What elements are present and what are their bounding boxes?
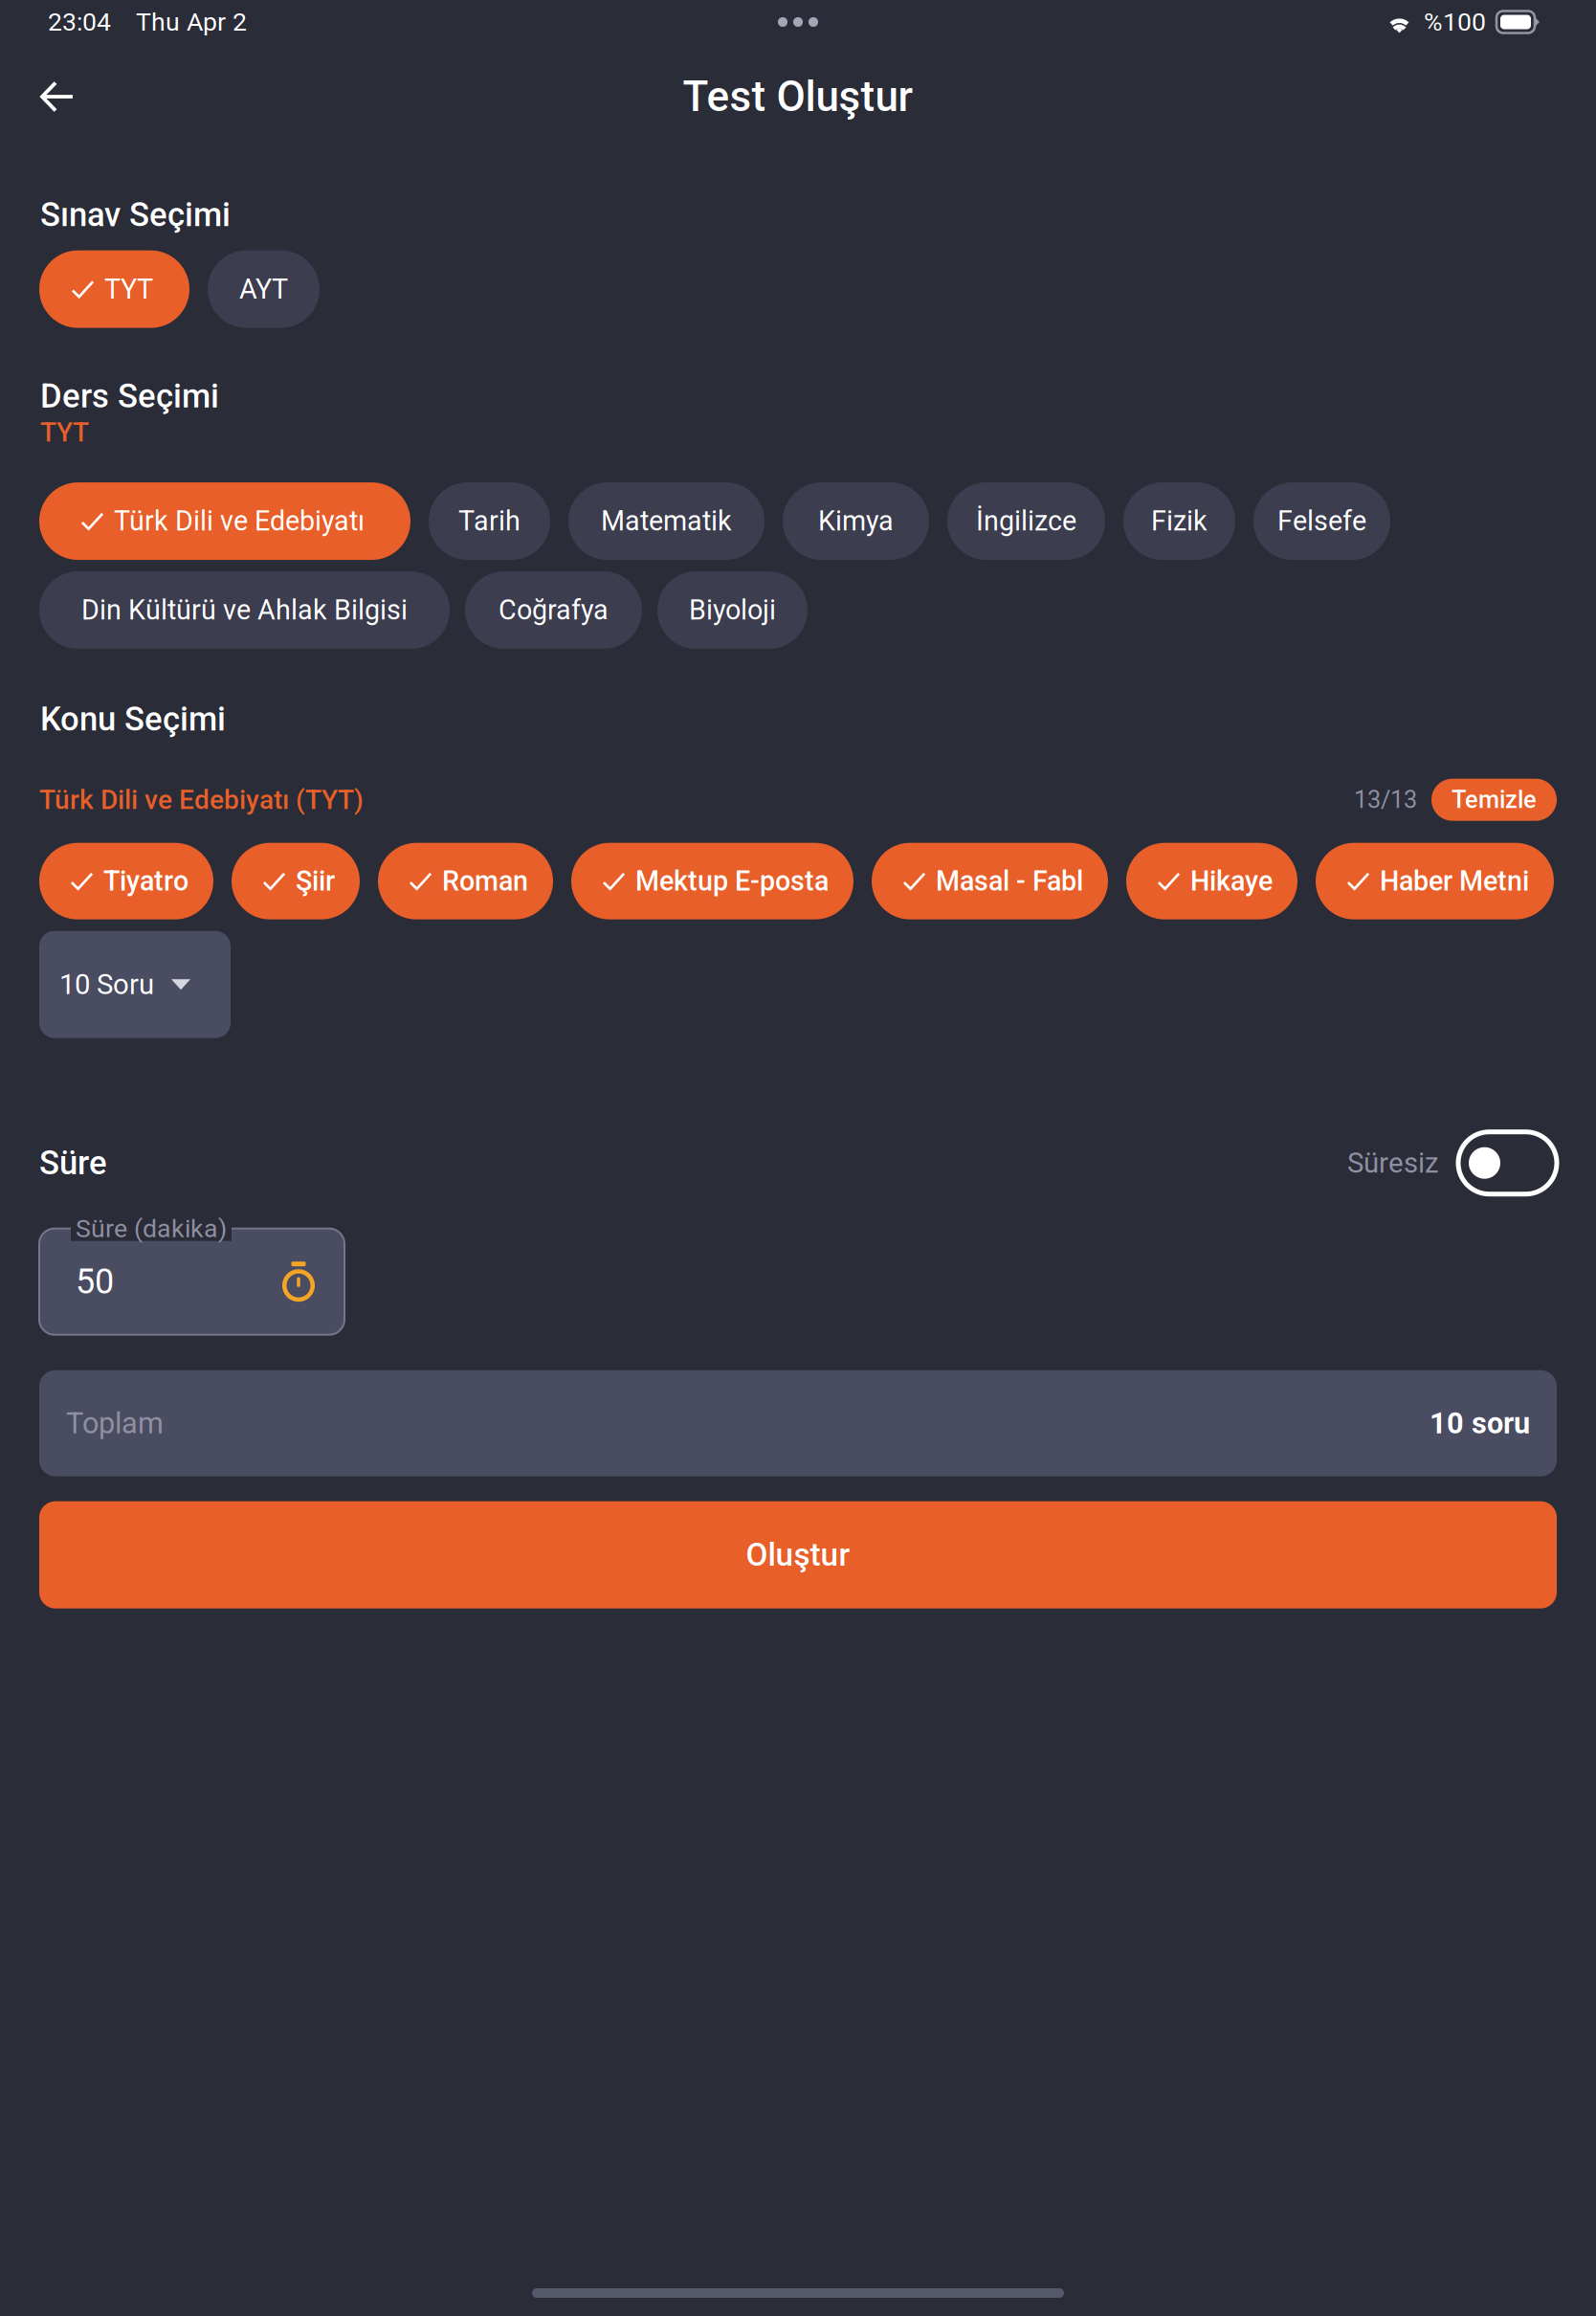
button[interactable]: İngilizce (947, 482, 1105, 560)
staticText: İngilizce (976, 505, 1076, 537)
staticText: Biyoloji (689, 594, 776, 626)
button[interactable]: Mektup E-posta (571, 843, 853, 919)
staticText: Kimya (818, 505, 894, 537)
button[interactable]: Süresiz (1458, 1132, 1557, 1194)
button[interactable]: Temizle (1431, 779, 1557, 821)
button[interactable]: Roman (378, 843, 553, 919)
staticText: Felsefe (1277, 505, 1366, 537)
staticText: Türk Dili ve Edebiyatı (TYT) (39, 784, 364, 815)
button[interactable]: Biyoloji (657, 571, 808, 649)
button[interactable]: Haber Metni (1316, 843, 1554, 919)
staticText: Tarih (458, 505, 521, 537)
staticText: Süresiz (1347, 1147, 1439, 1179)
staticText: Ders Seçimi (40, 377, 219, 416)
staticText: 10 Soru (59, 968, 154, 1001)
staticText: Thu Apr 2 (136, 7, 247, 37)
staticText: Oluştur (746, 1536, 850, 1574)
staticText: Mektup E-posta (635, 865, 829, 897)
button[interactable]: Matematik (568, 482, 765, 560)
button[interactable]: Türk Dili ve Edebiyatı (39, 482, 410, 560)
button[interactable]: Felsefe (1253, 482, 1390, 560)
staticText: TYT (40, 417, 89, 448)
staticText: AYT (239, 273, 288, 305)
button[interactable]: Din Kültürü ve Ahlak Bilgisi (39, 571, 450, 649)
staticText: Haber Metni (1380, 865, 1529, 897)
staticText: %100 (1424, 7, 1486, 37)
staticText: 10 soru (1430, 1406, 1530, 1440)
staticText: Din Kültürü ve Ahlak Bilgisi (81, 594, 408, 626)
button[interactable]: 10 Soru (39, 931, 231, 1038)
staticText: 13/13 (1354, 786, 1417, 814)
staticText: TYT (104, 273, 153, 305)
button[interactable]: TYT (39, 250, 189, 328)
button[interactable]: Back (31, 72, 83, 122)
button[interactable]: Fizik (1123, 482, 1235, 560)
button[interactable]: Tarih (429, 482, 550, 560)
staticText: 23:04 (48, 7, 111, 37)
staticText: Süre (dakika) (76, 1214, 227, 1244)
staticText: Masal - Fabl (936, 865, 1083, 897)
staticText: Türk Dili ve Edebiyatı (114, 505, 365, 537)
staticText: Şiir (296, 865, 335, 897)
staticText: Hikaye (1190, 865, 1273, 897)
button[interactable]: Şiir (232, 843, 360, 919)
staticText: Roman (442, 865, 528, 897)
button[interactable]: Masal - Fabl (872, 843, 1108, 919)
button[interactable]: Kimya (783, 482, 929, 560)
button[interactable]: Tiyatro (39, 843, 213, 919)
button[interactable]: Hikaye (1126, 843, 1297, 919)
staticText: Sınav Seçimi (40, 195, 231, 234)
staticText: 50 (76, 1261, 114, 1302)
staticText: Fizik (1151, 505, 1208, 537)
staticText: Toplam (66, 1406, 164, 1440)
staticText: Süre (39, 1144, 107, 1182)
button[interactable]: AYT (208, 250, 320, 328)
staticText: Matematik (601, 505, 732, 537)
button[interactable]: Coğrafya (465, 571, 642, 649)
staticText: Konu Seçimi (40, 700, 226, 739)
staticText: Coğrafya (499, 594, 609, 626)
staticText: Temizle (1452, 786, 1537, 814)
button[interactable]: Oluştur (39, 1501, 1557, 1608)
staticText: Test Oluştur (683, 72, 913, 121)
staticText: Tiyatro (103, 865, 188, 897)
